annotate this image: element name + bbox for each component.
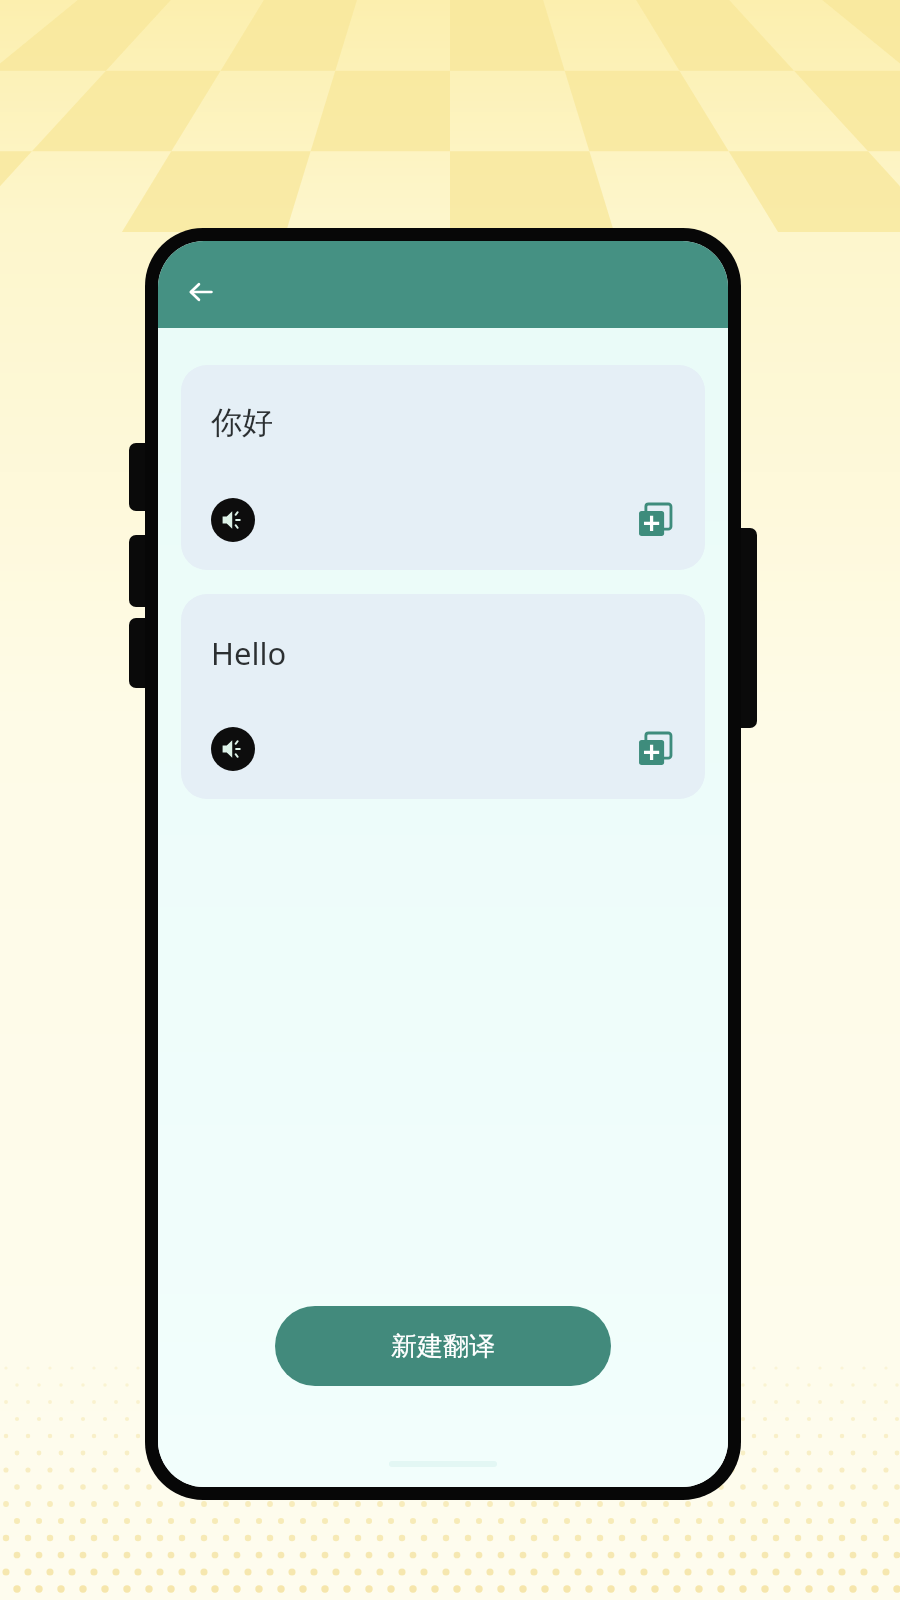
staticText: 新建翻译 (391, 1330, 495, 1363)
button[interactable]: Play audio (211, 727, 255, 771)
button[interactable]: Back (178, 269, 224, 315)
button[interactable]: 新建翻译 (275, 1306, 611, 1386)
staticText: Hello (211, 632, 287, 674)
button[interactable]: Play audio (211, 498, 255, 542)
button[interactable]: 你好 (181, 365, 705, 570)
staticText: 你好 (211, 403, 273, 442)
button[interactable]: Copy (631, 496, 679, 544)
button[interactable]: Hello (181, 594, 705, 799)
button[interactable]: Copy (631, 725, 679, 773)
